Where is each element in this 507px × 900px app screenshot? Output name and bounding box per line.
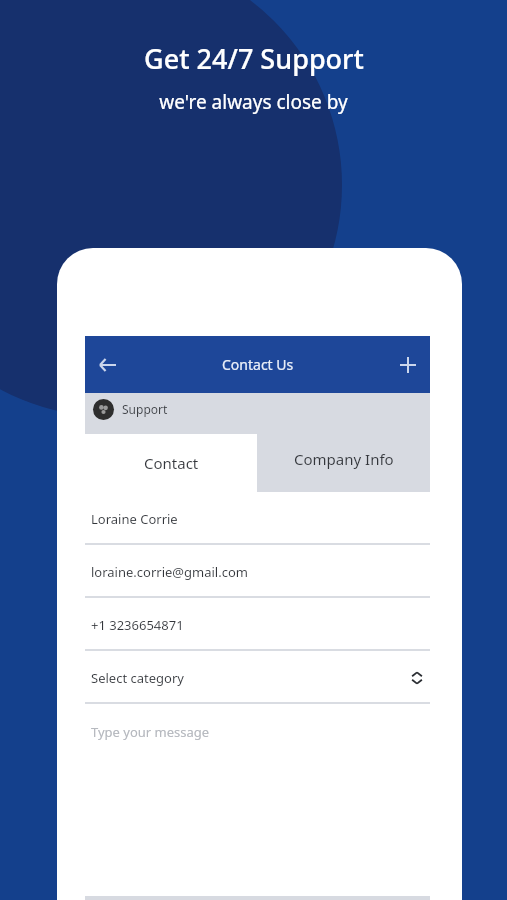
button[interactable]: Add — [386, 343, 430, 387]
staticText: Contact — [144, 453, 199, 473]
staticText: we're always close by — [159, 89, 348, 115]
staticText: Loraine Corrie — [91, 510, 178, 528]
staticText: Get 24/7 Support — [144, 40, 364, 77]
button[interactable]: Support — [85, 393, 430, 425]
button[interactable]: Company Info — [257, 425, 430, 492]
staticText: Contact Us — [222, 355, 294, 374]
button[interactable]: Select category — [85, 651, 430, 704]
staticText: loraine.corrie@gmail.com — [91, 563, 248, 581]
button[interactable]: Back — [85, 343, 129, 387]
button[interactable]: Loraine Corrie — [85, 492, 430, 545]
button[interactable]: Type your message — [85, 704, 430, 896]
staticText: Type your message — [91, 723, 210, 741]
staticText: Support — [122, 401, 168, 417]
staticText: Select category — [91, 669, 410, 687]
button[interactable]: +1 3236654871 — [85, 598, 430, 651]
staticText: +1 3236654871 — [91, 616, 184, 634]
button[interactable]: loraine.corrie@gmail.com — [85, 545, 430, 598]
button[interactable]: Contact — [85, 434, 257, 492]
staticText: Company Info — [294, 449, 394, 469]
